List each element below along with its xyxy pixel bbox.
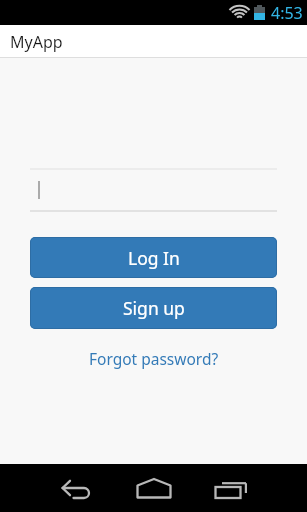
button[interactable] <box>0 464 103 512</box>
staticText: MyApp <box>10 31 63 53</box>
staticText: Sign up <box>123 296 185 320</box>
staticText: 4:53 <box>271 2 303 24</box>
button[interactable]: Log In <box>30 237 277 278</box>
button[interactable] <box>103 464 205 512</box>
button[interactable] <box>205 464 307 512</box>
button[interactable]: Forgot password? <box>89 348 219 369</box>
button[interactable] <box>30 168 277 212</box>
staticText: Log In <box>128 246 180 270</box>
staticText: Forgot password? <box>89 348 219 369</box>
button[interactable]: Sign up <box>30 287 277 329</box>
